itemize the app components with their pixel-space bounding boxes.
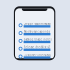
button[interactable]: Weekly sync agenda bbox=[15, 29, 54, 37]
staticText: Design system review bbox=[24, 22, 51, 26]
staticText: Weekly sync agenda bbox=[24, 30, 50, 33]
staticText: Customer interviews bbox=[24, 53, 51, 57]
staticText: Release checklist v2 bbox=[24, 45, 51, 49]
button[interactable]: Customer interviews bbox=[15, 53, 54, 60]
staticText: Backlog triage notes bbox=[24, 38, 52, 41]
button[interactable]: Design system review bbox=[15, 21, 54, 29]
button[interactable]: Release checklist v2 bbox=[15, 45, 54, 53]
button[interactable]: Backlog triage notes bbox=[15, 37, 54, 45]
